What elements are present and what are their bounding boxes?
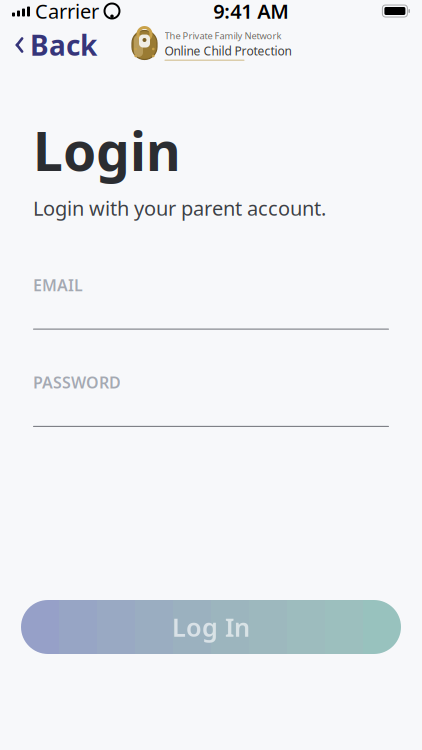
staticText: 9:41 AM (213, 0, 289, 24)
staticText: Login (33, 115, 181, 186)
button[interactable]: PASSWORD (33, 372, 389, 427)
staticText: Log In (172, 610, 250, 644)
staticText: Online Child Protection (164, 43, 291, 59)
staticText: Login with your parent account. (33, 195, 326, 221)
staticText: Back (30, 26, 97, 64)
button[interactable]: The Private Family Network (130, 25, 291, 65)
staticText: The Private Family Network (164, 29, 281, 42)
button[interactable]: EMAIL (33, 274, 389, 330)
button[interactable]: Log In (0, 600, 422, 654)
staticText: Carrier (35, 0, 99, 24)
staticText: EMAIL (33, 274, 83, 296)
staticText: PASSWORD (33, 372, 121, 393)
button[interactable]: Back (0, 18, 97, 72)
